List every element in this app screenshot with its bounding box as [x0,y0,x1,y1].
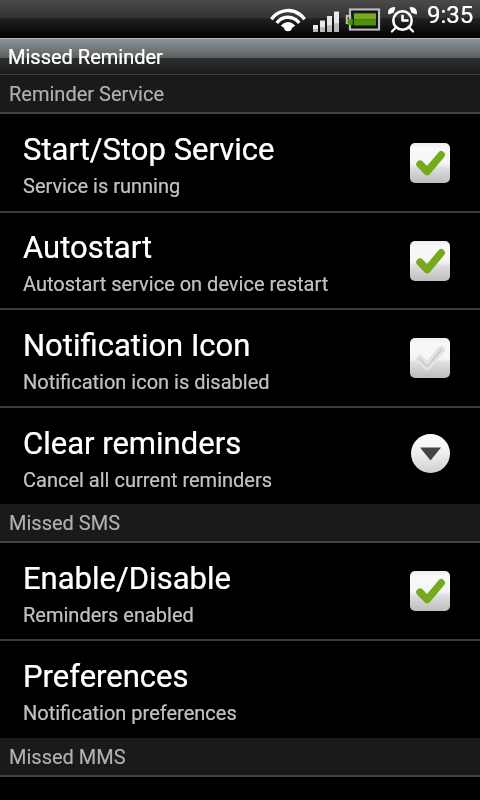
staticText: Service is running [23,174,181,197]
button[interactable]: Start/Stop Service [0,114,480,211]
staticText: Notification icon is disabled [23,370,270,393]
button[interactable]: Missed MMS [0,738,480,775]
staticText: Reminder Service [9,82,165,105]
button[interactable]: Clear reminders [0,408,480,504]
button[interactable]: Notification Icon [0,310,480,406]
staticText: Autostart [23,229,153,265]
button[interactable]: Disabled [410,338,450,378]
staticText: Missed MMS [9,745,126,768]
staticText: Missed SMS [9,511,121,534]
staticText: Start/Stop Service [23,131,275,167]
staticText: 9:35 [427,1,474,29]
staticText: Notification preferences [23,701,237,724]
button[interactable]: Expand clear reminders [411,434,450,473]
staticText: Cancel all current reminders [23,468,273,491]
button[interactable]: Enable/Disable [0,543,480,639]
button[interactable]: Preferences [0,641,480,738]
button[interactable]: Reminder Service [0,75,480,112]
staticText: Missed Reminder [8,45,163,68]
staticText: Notification Icon [23,327,251,363]
staticText: Clear reminders [23,425,242,461]
button[interactable]: Enabled [410,571,450,611]
button[interactable]: Enabled [410,143,450,183]
staticText: Preferences [23,658,189,694]
staticText: Reminders enabled [23,603,194,626]
staticText: Autostart service on device restart [23,272,329,295]
button[interactable]: Missed SMS [0,504,480,541]
staticText: Enable/Disable [23,560,231,596]
button[interactable]: Enabled [410,241,450,281]
button[interactable]: Autostart [0,213,480,308]
